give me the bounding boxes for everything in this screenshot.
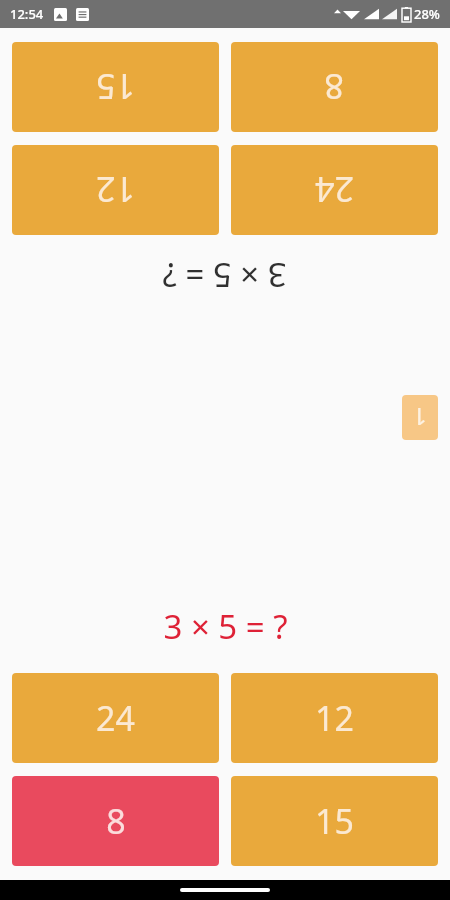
button[interactable]: Score 1 [402,395,438,440]
button[interactable]: 8 [12,776,219,866]
staticText: 12:54 [10,5,44,23]
staticText: 24 [96,695,135,741]
staticText: 12 [315,695,354,741]
staticText: 8 [106,798,126,844]
staticText: 24 [315,167,354,213]
button[interactable]: 12 [231,673,438,763]
staticText: 12 [96,167,135,213]
staticText: 8 [324,64,344,110]
button[interactable]: 15 [231,776,438,866]
staticText: 1 [413,401,427,434]
staticText: 3 × 5 = ? [163,604,288,649]
button[interactable]: 15 [12,42,219,132]
staticText: 15 [96,64,135,110]
button[interactable]: 24 [12,673,219,763]
staticText: 28% [414,5,440,23]
button[interactable]: 24 [231,145,438,235]
staticText: 3 × 5 = ? [162,253,287,298]
button[interactable]: 8 [231,42,438,132]
button[interactable]: 12 [12,145,219,235]
staticText: 15 [315,798,354,844]
